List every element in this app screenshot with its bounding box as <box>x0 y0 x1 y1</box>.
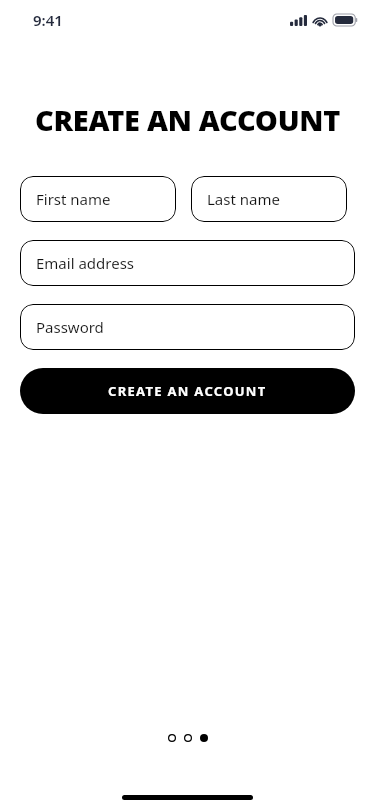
button[interactable]: Email address <box>20 240 355 286</box>
button[interactable]: Last name <box>191 176 347 222</box>
staticText: CREATE AN ACCOUNT <box>0 100 375 139</box>
staticText: CREATE AN ACCOUNT <box>108 382 267 400</box>
button[interactable]: Current page <box>200 734 208 742</box>
button[interactable]: First name <box>20 176 176 222</box>
staticText: Password <box>36 317 104 337</box>
staticText: Email address <box>36 253 135 273</box>
button[interactable]: Password <box>20 304 355 350</box>
button[interactable]: Page <box>184 734 192 742</box>
staticText: First name <box>36 189 111 209</box>
button[interactable]: CREATE AN ACCOUNT <box>20 368 355 414</box>
staticText: Last name <box>207 189 280 209</box>
button[interactable]: Page <box>168 734 176 742</box>
staticText: 9:41 <box>33 10 63 30</box>
